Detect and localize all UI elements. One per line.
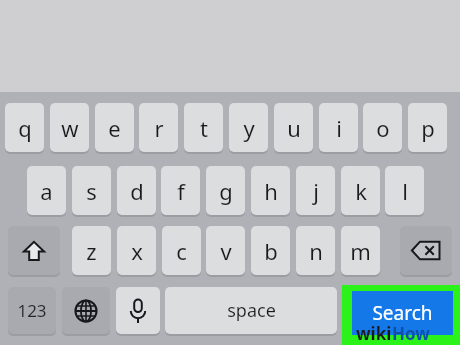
staticText: m <box>350 236 371 266</box>
button[interactable]: i <box>319 103 358 152</box>
button[interactable]: j <box>296 166 335 215</box>
staticText: b <box>264 236 278 266</box>
staticText: g <box>219 176 233 206</box>
button[interactable]: Search <box>352 291 453 335</box>
staticText: s <box>86 176 97 206</box>
button[interactable]: d <box>117 166 156 215</box>
button[interactable]: Change keyboard language <box>62 287 110 334</box>
button[interactable]: e <box>95 103 134 152</box>
staticText: c <box>176 236 187 266</box>
button[interactable]: m <box>341 226 380 275</box>
button[interactable]: r <box>139 103 178 152</box>
button[interactable]: h <box>251 166 290 215</box>
button[interactable]: q <box>5 103 44 152</box>
staticText: t <box>200 113 208 143</box>
staticText: 123 <box>17 299 47 322</box>
button[interactable]: u <box>274 103 313 152</box>
button[interactable]: c <box>162 226 201 275</box>
staticText: l <box>402 176 408 206</box>
button[interactable]: a <box>27 166 66 215</box>
button[interactable]: 123 <box>8 287 56 334</box>
button[interactable]: space <box>165 287 337 334</box>
staticText: Search <box>372 300 433 326</box>
staticText: y <box>243 113 255 143</box>
button[interactable]: Shift <box>8 226 60 275</box>
staticText: How <box>392 322 430 344</box>
button[interactable]: o <box>363 103 402 152</box>
staticText: k <box>355 176 367 206</box>
staticText: e <box>108 113 121 143</box>
staticText: v <box>220 236 232 266</box>
staticText: z <box>86 236 97 266</box>
button[interactable]: f <box>161 166 200 215</box>
staticText: n <box>309 236 323 266</box>
button[interactable]: s <box>72 166 111 215</box>
button[interactable]: p <box>408 103 447 152</box>
staticText: wiki <box>356 322 392 344</box>
staticText: q <box>18 113 32 143</box>
button[interactable]: n <box>296 226 335 275</box>
staticText: x <box>131 236 143 266</box>
staticText: h <box>264 176 278 206</box>
staticText: i <box>336 113 342 143</box>
button[interactable]: y <box>229 103 268 152</box>
button[interactable]: g <box>206 166 245 215</box>
button[interactable]: Voice input <box>116 287 160 334</box>
staticText: o <box>376 113 390 143</box>
staticText: space <box>227 298 276 323</box>
staticText: r <box>154 113 164 143</box>
button[interactable]: v <box>206 226 245 275</box>
button[interactable]: b <box>251 226 290 275</box>
button[interactable]: w <box>50 103 89 152</box>
button[interactable]: k <box>341 166 380 215</box>
staticText: a <box>40 176 53 206</box>
staticText: j <box>313 176 319 206</box>
button[interactable]: x <box>117 226 156 275</box>
button[interactable]: z <box>72 226 111 275</box>
button[interactable]: Backspace <box>400 226 452 275</box>
staticText: p <box>421 113 435 143</box>
staticText: d <box>130 176 144 206</box>
staticText: u <box>287 113 301 143</box>
staticText: w <box>61 113 79 143</box>
staticText: f <box>177 176 185 206</box>
button[interactable]: t <box>184 103 223 152</box>
button[interactable]: l <box>385 166 424 215</box>
